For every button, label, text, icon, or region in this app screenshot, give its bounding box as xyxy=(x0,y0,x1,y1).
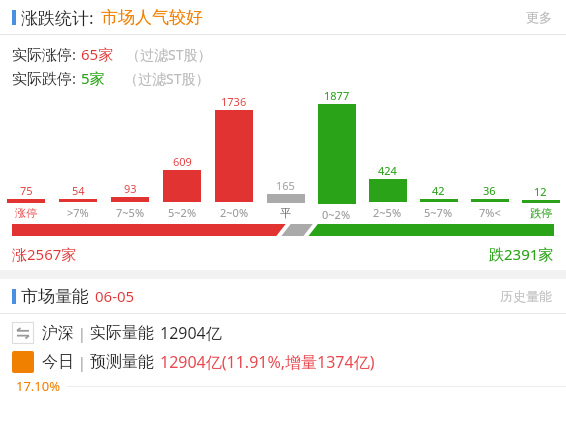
staticText: 424 xyxy=(378,163,397,178)
staticText: >7% xyxy=(67,205,89,220)
staticText: 今日 xyxy=(42,352,74,372)
button[interactable]: 1736 xyxy=(208,94,260,220)
staticText: 93 xyxy=(124,181,137,196)
button[interactable]: 市场量能 xyxy=(0,279,566,313)
button[interactable]: 42 xyxy=(413,183,464,220)
staticText: 06-05 xyxy=(95,286,135,306)
staticText: 实际涨停: xyxy=(12,44,77,64)
staticText: 跌停 xyxy=(530,206,552,220)
button[interactable]: 93 xyxy=(104,181,156,220)
staticText: 沪深 xyxy=(42,323,74,343)
button[interactable]: 75 xyxy=(0,183,52,220)
staticText: 2~5% xyxy=(373,205,402,220)
staticText: 7%< xyxy=(479,205,501,220)
staticText: 0~2% xyxy=(322,207,351,220)
staticText: 75 xyxy=(20,183,33,198)
button[interactable]: 12 xyxy=(515,184,566,220)
staticText: 1877 xyxy=(324,88,350,103)
staticText: 5家 xyxy=(81,68,105,88)
staticText: 12 xyxy=(534,184,547,199)
other: 沪深切换 xyxy=(12,322,34,344)
staticText: 实际量能 xyxy=(90,323,154,343)
staticText: 1736 xyxy=(221,94,247,109)
staticText: 5~2% xyxy=(168,205,197,220)
staticText: 预测量能 xyxy=(90,352,154,372)
staticText: 平 xyxy=(280,206,291,220)
staticText: | xyxy=(78,324,86,343)
staticText: 36 xyxy=(483,183,496,198)
other: 今日预测量能 xyxy=(12,351,34,373)
staticText: 12904亿 xyxy=(160,322,222,344)
button[interactable]: 更多 xyxy=(526,9,552,25)
button[interactable]: 1877 xyxy=(311,88,362,220)
button[interactable]: 36 xyxy=(464,183,515,220)
staticText: 跌2391家 xyxy=(489,244,554,264)
staticText: 65家 xyxy=(81,44,114,64)
staticText: 609 xyxy=(173,154,192,169)
staticText: 12904亿(11.91%,增量1374亿) xyxy=(160,351,375,373)
staticText: 历史量能 xyxy=(500,288,552,304)
staticText: 涨停 xyxy=(15,206,37,220)
button[interactable]: 54 xyxy=(52,183,104,220)
staticText: 7~5% xyxy=(116,205,145,220)
staticText: | xyxy=(78,353,86,372)
staticText: 42 xyxy=(432,183,445,198)
button[interactable]: 609 xyxy=(156,154,208,220)
staticText: 涨2567家 xyxy=(12,244,77,264)
button[interactable]: 今日预测量能 xyxy=(0,351,566,373)
button[interactable]: 165 xyxy=(260,178,311,220)
button[interactable]: 涨跌统计: xyxy=(0,0,566,34)
staticText: 更多 xyxy=(526,9,552,25)
staticText: 实际跌停: xyxy=(12,68,77,88)
staticText: 5~7% xyxy=(424,205,453,220)
staticText: 2~0% xyxy=(220,205,249,220)
staticText: 165 xyxy=(276,178,295,193)
staticText: 54 xyxy=(72,183,85,198)
staticText: 市场人气较好 xyxy=(101,7,203,28)
staticText: 17.10% xyxy=(16,377,61,395)
staticText: 市场量能 xyxy=(21,286,89,307)
staticText: （过滤ST股） xyxy=(126,45,212,64)
button[interactable]: 历史量能 xyxy=(500,288,552,304)
button[interactable]: 沪深切换 xyxy=(0,322,566,344)
staticText: 涨跌统计: xyxy=(21,6,94,29)
staticText: （过滤ST股） xyxy=(124,69,210,88)
button[interactable]: 424 xyxy=(362,163,413,220)
